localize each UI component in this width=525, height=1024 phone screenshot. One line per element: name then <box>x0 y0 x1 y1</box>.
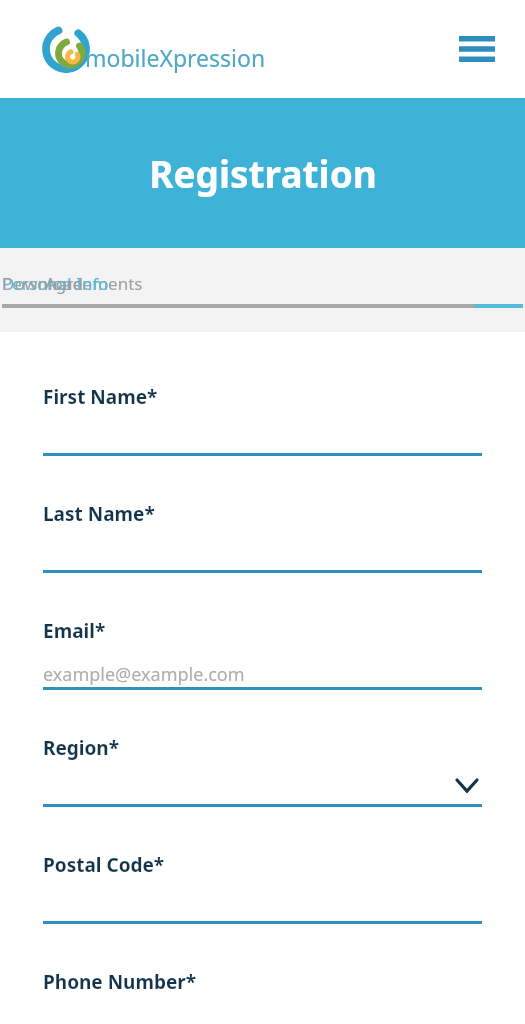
button[interactable]: Open navigation menu <box>455 27 499 71</box>
button[interactable]: Download <box>0 268 477 312</box>
staticText: Last Name* <box>43 501 155 527</box>
staticText: mobileXpression <box>85 42 266 73</box>
staticText: Agreements <box>45 272 143 295</box>
button[interactable]: Email* <box>43 618 482 735</box>
staticText: Email* <box>43 618 106 644</box>
staticText: Region* <box>43 735 120 761</box>
button[interactable]: First Name* <box>43 384 482 501</box>
button[interactable]: Postal Code* <box>43 852 482 969</box>
staticText: Download <box>2 272 83 295</box>
button[interactable]: Region* <box>43 735 482 852</box>
button[interactable]: Personal Info <box>0 268 525 312</box>
staticText: Postal Code* <box>43 852 165 878</box>
staticText: Registration <box>149 148 377 198</box>
staticText: Phone Number* <box>43 969 197 995</box>
staticText: example@example.com <box>43 662 245 687</box>
other: Select region <box>452 770 482 800</box>
staticText: First Name* <box>43 384 158 410</box>
button[interactable]: Agreements <box>43 268 525 312</box>
button[interactable]: Last Name* <box>43 501 482 618</box>
staticText: Personal Info <box>2 272 109 295</box>
button[interactable]: mobileXpression <box>41 24 272 74</box>
